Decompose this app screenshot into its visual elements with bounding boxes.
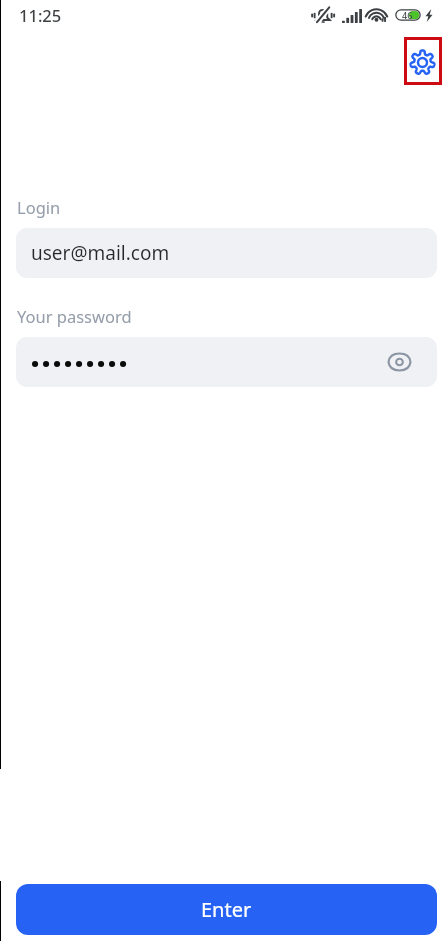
staticText: Login	[17, 196, 61, 218]
staticText: 11:25	[19, 4, 62, 26]
button[interactable]: Enter	[16, 884, 437, 935]
staticText: Your password	[17, 305, 132, 327]
staticText: user@mail.com	[31, 240, 170, 266]
button[interactable]: Show password	[375, 338, 423, 386]
staticText: 46	[402, 9, 413, 21]
button[interactable]: user@mail.com	[16, 228, 437, 278]
staticText: Enter	[201, 896, 252, 923]
button[interactable]: Settings	[404, 37, 442, 85]
button[interactable]: Show password	[16, 337, 437, 387]
